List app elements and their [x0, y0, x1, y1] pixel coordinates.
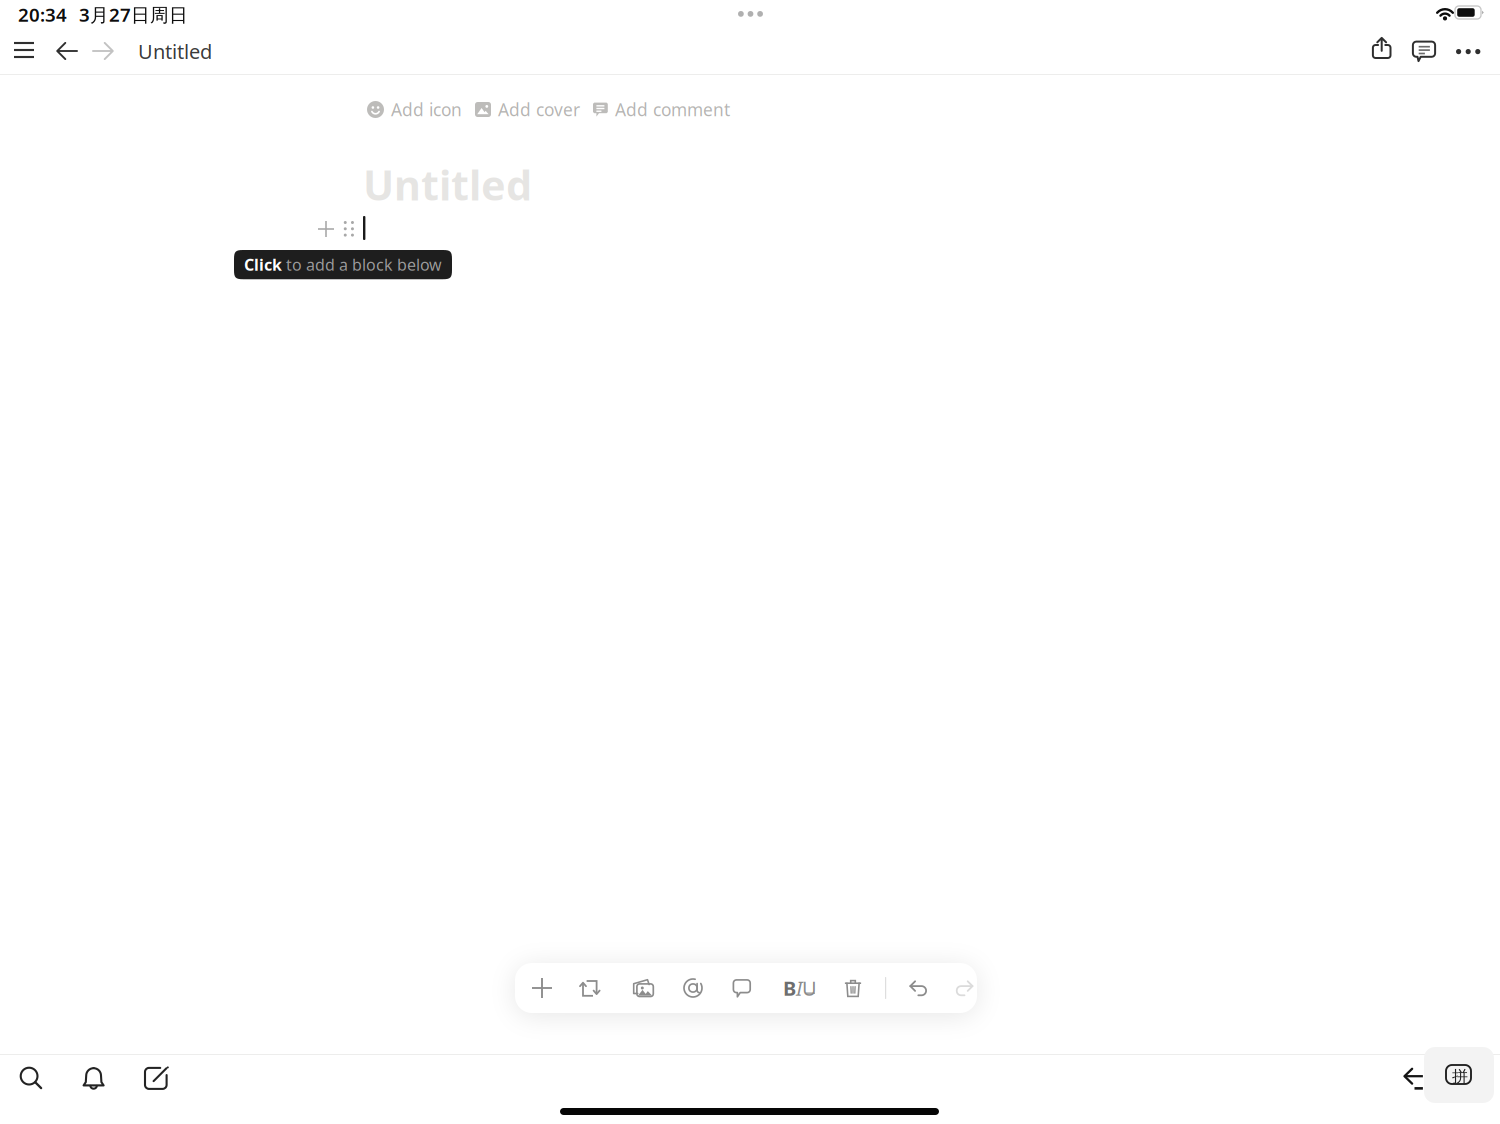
- button[interactable]: Redo: [943, 963, 987, 1013]
- staticText: Click: [244, 254, 282, 275]
- button[interactable]: Mention: [671, 963, 715, 1013]
- staticText: Untitled: [363, 157, 532, 212]
- button[interactable]: Undo: [896, 963, 940, 1013]
- button[interactable]: Forward: [83, 31, 123, 71]
- staticText: U: [802, 975, 817, 1001]
- staticText: Untitled: [138, 38, 212, 65]
- button[interactable]: Notifications: [72, 1056, 116, 1100]
- staticText: 3月27日周日: [79, 2, 188, 27]
- button[interactable]: Add comment: [593, 93, 730, 126]
- button[interactable]: Comments: [1402, 29, 1446, 73]
- staticText: Add cover: [498, 98, 580, 121]
- button[interactable]: Drag to move: [340, 217, 358, 241]
- button[interactable]: New page: [135, 1056, 179, 1100]
- button[interactable]: More: [1446, 30, 1490, 74]
- staticText: I: [796, 975, 802, 1001]
- staticText: 20:34: [18, 2, 67, 27]
- button[interactable]: Menu: [4, 30, 44, 70]
- staticText: Add icon: [391, 98, 462, 121]
- button[interactable]: Insert block: [520, 963, 564, 1013]
- button[interactable]: Comment: [720, 963, 764, 1013]
- button[interactable]: Add cover: [475, 93, 580, 126]
- button[interactable]: Share: [1360, 26, 1404, 70]
- staticText: to add a block below: [282, 254, 442, 275]
- button[interactable]: Back: [47, 31, 87, 71]
- button[interactable]: Delete block: [831, 963, 875, 1013]
- staticText: B: [783, 975, 796, 1001]
- button[interactable]: Hide keyboard: [1392, 1057, 1436, 1101]
- button[interactable]: Turn into: [568, 963, 612, 1013]
- button[interactable]: Add block below: [314, 217, 338, 241]
- button[interactable]: Pinyin input: [1424, 1047, 1494, 1103]
- button[interactable]: Untitled: [130, 30, 220, 73]
- staticText: 拼: [1452, 1066, 1468, 1086]
- button[interactable]: Text formatting: [778, 963, 822, 1013]
- button[interactable]: Search: [9, 1056, 53, 1100]
- button[interactable]: Insert image: [621, 963, 665, 1013]
- staticText: Add comment: [615, 98, 730, 121]
- button[interactable]: Add icon: [367, 93, 462, 126]
